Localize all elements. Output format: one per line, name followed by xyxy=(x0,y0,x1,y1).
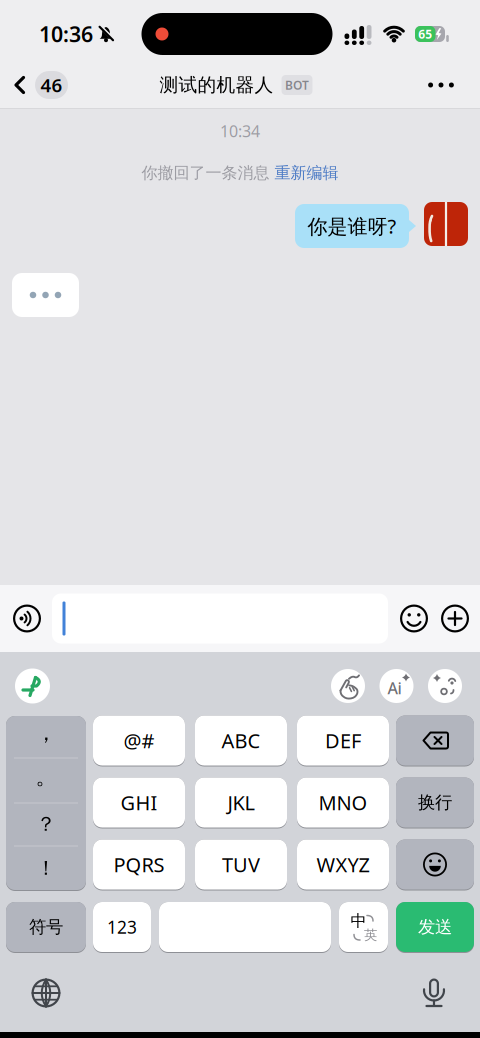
staticText: 重新编辑 xyxy=(274,163,338,183)
staticText: PQRS xyxy=(113,851,164,878)
staticText: JKL xyxy=(227,789,254,816)
button[interactable] xyxy=(31,978,60,1007)
staticText: MNO xyxy=(318,789,367,816)
staticText: 英 xyxy=(364,927,377,943)
staticText: 符号 xyxy=(29,916,63,938)
staticText: 你撤回了一条消息 xyxy=(141,163,269,183)
staticText: WXYZ xyxy=(316,851,369,878)
button[interactable] xyxy=(424,202,468,246)
button[interactable]: JKL xyxy=(195,777,287,828)
button[interactable]: 换行 xyxy=(396,777,474,828)
button[interactable] xyxy=(396,715,474,766)
button[interactable]: GHI xyxy=(93,777,185,828)
staticText: BOT xyxy=(285,77,309,93)
staticText: TUV xyxy=(222,851,260,878)
button[interactable]: MNO xyxy=(297,777,389,828)
staticText: 123 xyxy=(107,915,137,938)
staticText: DEF xyxy=(325,727,361,754)
button[interactable] xyxy=(423,977,445,1008)
staticText: 换行 xyxy=(418,792,452,813)
staticText: GHI xyxy=(120,789,157,816)
staticText: 。 xyxy=(35,764,56,790)
button[interactable]: 46 xyxy=(14,71,68,99)
button[interactable]: 符号 xyxy=(6,902,86,953)
staticText: 10:36 xyxy=(39,20,93,48)
button[interactable]: PQRS xyxy=(93,839,185,890)
button[interactable]: DEF xyxy=(297,715,389,766)
staticText: 10:34 xyxy=(220,120,260,142)
staticText: 测试的机器人 xyxy=(159,73,273,96)
button[interactable] xyxy=(396,839,474,890)
staticText: 46 xyxy=(40,73,62,97)
button[interactable]: 发送 xyxy=(396,902,474,953)
button[interactable]: ABC xyxy=(195,715,287,766)
staticText: ， xyxy=(35,720,56,746)
button[interactable]: ， xyxy=(6,716,86,891)
button[interactable]: @# xyxy=(93,715,185,766)
staticText: 发送 xyxy=(418,916,452,938)
staticText: ABC xyxy=(221,727,260,754)
button[interactable] xyxy=(15,668,50,703)
button[interactable]: WXYZ xyxy=(297,839,389,890)
button[interactable] xyxy=(419,70,463,100)
button[interactable]: TUV xyxy=(195,839,287,890)
staticText: ？ xyxy=(36,812,56,836)
staticText: 65 xyxy=(418,26,432,42)
button[interactable]: 你是谁呀? xyxy=(295,204,409,248)
button[interactable]: 重新编辑 xyxy=(274,163,338,183)
button[interactable] xyxy=(331,669,365,703)
button[interactable] xyxy=(441,604,469,632)
button[interactable] xyxy=(52,593,388,643)
button[interactable] xyxy=(159,902,331,953)
staticText: 中 xyxy=(350,911,366,931)
staticText: Ai xyxy=(387,677,401,699)
staticText: 你是谁呀? xyxy=(307,213,396,239)
button[interactable] xyxy=(428,669,462,703)
button[interactable] xyxy=(400,604,428,632)
button[interactable]: 123 xyxy=(93,902,151,953)
staticText: ！ xyxy=(36,856,56,880)
button[interactable]: 中 xyxy=(339,902,388,953)
button[interactable] xyxy=(13,604,41,632)
staticText: @# xyxy=(123,727,154,754)
button[interactable]: Ai xyxy=(379,669,413,703)
